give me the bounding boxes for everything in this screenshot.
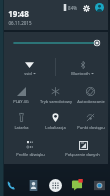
staticText: ssid (24, 71, 32, 76)
button[interactable]: User profile (94, 2, 105, 13)
button[interactable]: Phone (3, 177, 19, 193)
staticText: 06.11.2015 (8, 20, 32, 26)
staticText: Punkt dostępu (77, 125, 105, 130)
button[interactable]: Tryb samolotowy (38, 82, 73, 108)
staticText: 84% (68, 5, 77, 11)
staticText: Bluetooth (71, 71, 90, 76)
button[interactable]: Latarka (4, 108, 38, 134)
button[interactable]: PLAY 4G (4, 82, 38, 108)
staticText: Połączenie danych (65, 152, 100, 157)
button[interactable]: Połączenie danych (56, 135, 108, 161)
button[interactable]: Punkt dostępu (73, 108, 108, 134)
staticText: Lokalizacja (45, 125, 66, 130)
button[interactable]: Brightness (4, 32, 108, 54)
staticText: Latarka (14, 125, 29, 130)
button[interactable]: Messages (69, 177, 85, 193)
staticText: Profile dźwięku (16, 152, 45, 157)
button[interactable]: Profile dźwięku (4, 135, 56, 161)
staticText: PLAY 4G (13, 99, 29, 104)
staticText: Autoobracanie (77, 99, 105, 104)
button[interactable]: Settings (81, 3, 91, 13)
button[interactable]: Autoobracanie (73, 82, 108, 108)
button[interactable]: Apps (47, 177, 63, 193)
button[interactable]: ssid (4, 54, 55, 80)
button[interactable]: Camera (91, 177, 107, 193)
button[interactable]: Lokalizacja (38, 108, 73, 134)
staticText: Tryb samolotowy (40, 99, 72, 104)
button[interactable]: Contacts (25, 177, 41, 193)
staticText: 19:48 (8, 8, 29, 19)
button[interactable]: Bluetooth (56, 54, 108, 80)
